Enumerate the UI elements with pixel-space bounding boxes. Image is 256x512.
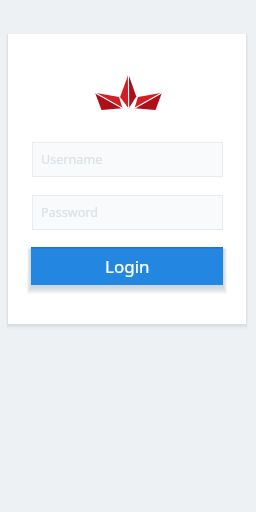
staticText: Password — [41, 204, 98, 221]
button[interactable]: Password — [32, 195, 223, 230]
other: App logo — [92, 70, 168, 111]
staticText: Username — [41, 151, 103, 168]
button[interactable]: Login — [31, 247, 223, 285]
button[interactable]: Username — [32, 142, 223, 177]
staticText: Login — [105, 255, 150, 278]
